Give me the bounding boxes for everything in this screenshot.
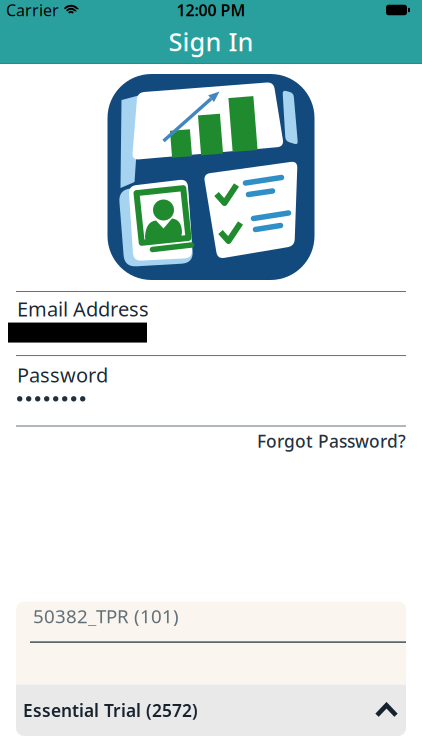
staticText: 50382_TPR (101) xyxy=(33,603,179,628)
button[interactable]: Email Address xyxy=(0,292,422,343)
staticText: 12:00 PM xyxy=(176,0,245,21)
staticText: Essential Trial (2572) xyxy=(23,699,198,722)
staticText: Password xyxy=(17,362,108,388)
staticText: Email Address xyxy=(17,295,149,322)
staticText: Sign In xyxy=(168,25,253,58)
button[interactable]: Password xyxy=(0,356,422,402)
button[interactable]: 50382_TPR (101) xyxy=(16,601,406,684)
staticText: Forgot Password? xyxy=(257,429,406,452)
button[interactable]: Essential Trial (2572) xyxy=(16,684,406,736)
button[interactable]: Forgot Password? xyxy=(257,429,406,452)
staticText: Carrier xyxy=(6,0,59,21)
